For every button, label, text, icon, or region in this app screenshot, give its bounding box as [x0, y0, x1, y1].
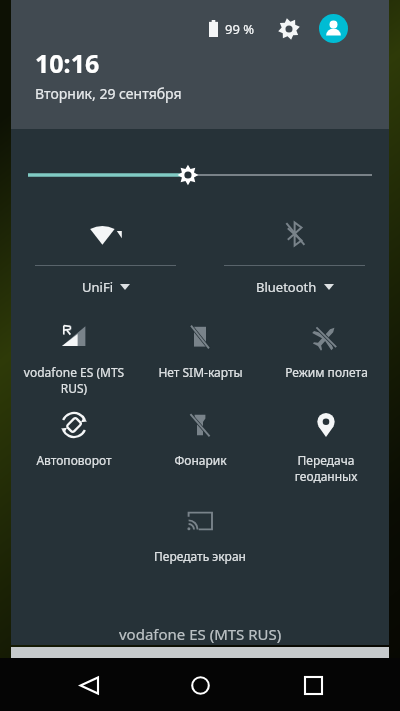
staticText: Передать экран — [154, 548, 246, 564]
staticText: Нет SIM-карты — [158, 364, 243, 380]
staticText: 99 % — [225, 20, 255, 38]
button[interactable]: Brightness — [11, 161, 389, 189]
button[interactable]: Bluetooth — [200, 216, 389, 296]
button[interactable]: Recent apps — [288, 660, 338, 710]
staticText: Фонарик — [174, 452, 227, 468]
button[interactable]: User profile — [319, 14, 348, 43]
button[interactable]: Передать экран — [137, 506, 263, 564]
staticText: Bluetooth — [256, 278, 317, 296]
button[interactable]: Режим полета — [263, 322, 389, 380]
button[interactable]: Settings — [275, 15, 303, 43]
staticText: 10:16 — [35, 46, 100, 80]
button[interactable]: Фонарик — [137, 410, 263, 468]
button[interactable]: UniFi — [11, 216, 200, 296]
button[interactable]: Нет SIM-карты — [137, 322, 263, 380]
button[interactable]: Передача геоданных — [263, 410, 389, 484]
button[interactable]: vodafone ES (MTS RUS) — [11, 322, 137, 396]
staticText: Режим полета — [285, 364, 368, 380]
button[interactable]: Автоповорот — [11, 410, 137, 468]
staticText: Автоповорот — [36, 452, 112, 468]
staticText: vodafone ES (MTS RUS) — [119, 624, 282, 644]
staticText: Вторник, 29 сентября — [35, 84, 182, 103]
staticText: vodafone ES (MTS RUS) — [16, 364, 132, 396]
button[interactable]: Back — [63, 660, 113, 710]
button[interactable]: Home — [175, 660, 225, 710]
staticText: Передача геоданных — [268, 452, 384, 484]
staticText: UniFi — [82, 278, 113, 296]
